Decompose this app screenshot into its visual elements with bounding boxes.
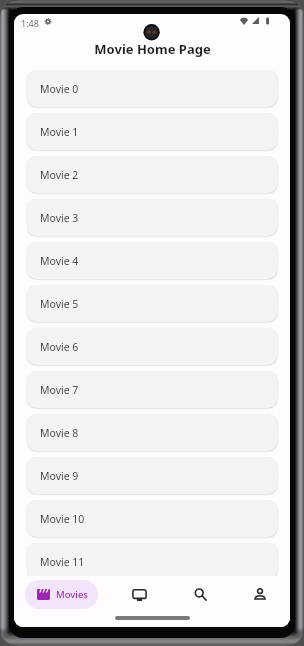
staticText: Movie Home Page bbox=[94, 40, 211, 58]
staticText: Movie 7 bbox=[40, 383, 79, 397]
button[interactable]: Movie 8 bbox=[27, 414, 277, 451]
button[interactable]: Movie 2 bbox=[27, 156, 277, 193]
button[interactable]: Movie 3 bbox=[27, 199, 277, 236]
button[interactable]: Movie 11 bbox=[27, 543, 277, 580]
button[interactable]: Movie 6 bbox=[27, 328, 277, 365]
button[interactable]: Profile bbox=[230, 576, 290, 612]
staticText: Movie 4 bbox=[40, 254, 79, 268]
button[interactable]: Movie 10 bbox=[27, 500, 277, 537]
button[interactable]: TV Shows bbox=[109, 576, 170, 612]
staticText: Movie 1 bbox=[40, 125, 79, 139]
staticText: Movies bbox=[56, 588, 88, 601]
button[interactable]: Movies bbox=[25, 580, 98, 609]
button[interactable]: Movie 9 bbox=[27, 457, 277, 494]
button[interactable]: Movie 1 bbox=[27, 113, 277, 150]
staticText: Movie 10 bbox=[40, 512, 85, 526]
staticText: Movie 5 bbox=[40, 297, 79, 311]
button[interactable]: Movie 12 bbox=[27, 586, 277, 623]
staticText: Movie 11 bbox=[40, 555, 85, 569]
button[interactable]: Movie 5 bbox=[27, 285, 277, 322]
staticText: Movie 12 bbox=[40, 598, 85, 612]
staticText: Movie 3 bbox=[40, 211, 79, 225]
staticText: Movie 0 bbox=[40, 82, 79, 96]
button[interactable]: Search bbox=[170, 576, 230, 612]
button[interactable]: Movie 0 bbox=[27, 70, 277, 107]
staticText: Movie 9 bbox=[40, 469, 79, 483]
staticText: Movie 2 bbox=[40, 168, 79, 182]
staticText: Movie 6 bbox=[40, 340, 79, 354]
staticText: 1:48 bbox=[21, 17, 39, 29]
button[interactable]: Movie 7 bbox=[27, 371, 277, 408]
button[interactable]: Movie 4 bbox=[27, 242, 277, 279]
staticText: Movie 8 bbox=[40, 426, 79, 440]
